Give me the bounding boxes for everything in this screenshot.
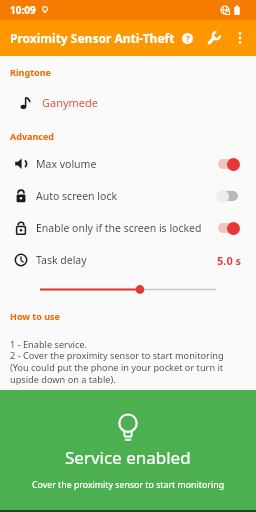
staticText: Ringtone [10, 66, 51, 78]
staticText: Advanced [10, 130, 55, 142]
button[interactable]: Auto screen lock [0, 180, 256, 212]
button[interactable]: Ganymede [0, 85, 256, 119]
staticText: Task delay [36, 253, 87, 267]
staticText: Service enabled [65, 446, 191, 469]
button[interactable] [202, 27, 224, 49]
staticText: Cover the proximity sensor to start moni… [32, 479, 225, 491]
staticText: 1 - Enable service. 2 - Cover the proxim… [10, 338, 224, 386]
button[interactable]: Task delay [0, 244, 256, 276]
staticText: Proximity Sensor Anti-Theft [10, 30, 175, 46]
button[interactable]: Max volume [0, 148, 256, 180]
staticText: Max volume [36, 157, 97, 171]
button[interactable] [0, 276, 256, 303]
staticText: Auto screen lock [36, 189, 118, 203]
staticText: Ganymede [42, 95, 99, 110]
staticText: 10:09 [10, 3, 36, 17]
staticText: How to use [10, 310, 60, 322]
staticText: ? [186, 33, 190, 44]
button[interactable] [230, 28, 250, 48]
button[interactable]: Enable only if the screen is locked [0, 212, 256, 244]
staticText: 5.0 s [217, 253, 242, 268]
button[interactable]: ? [176, 27, 198, 49]
button[interactable]: Service enabled [0, 390, 256, 512]
staticText: Enable only if the screen is locked [36, 221, 202, 235]
